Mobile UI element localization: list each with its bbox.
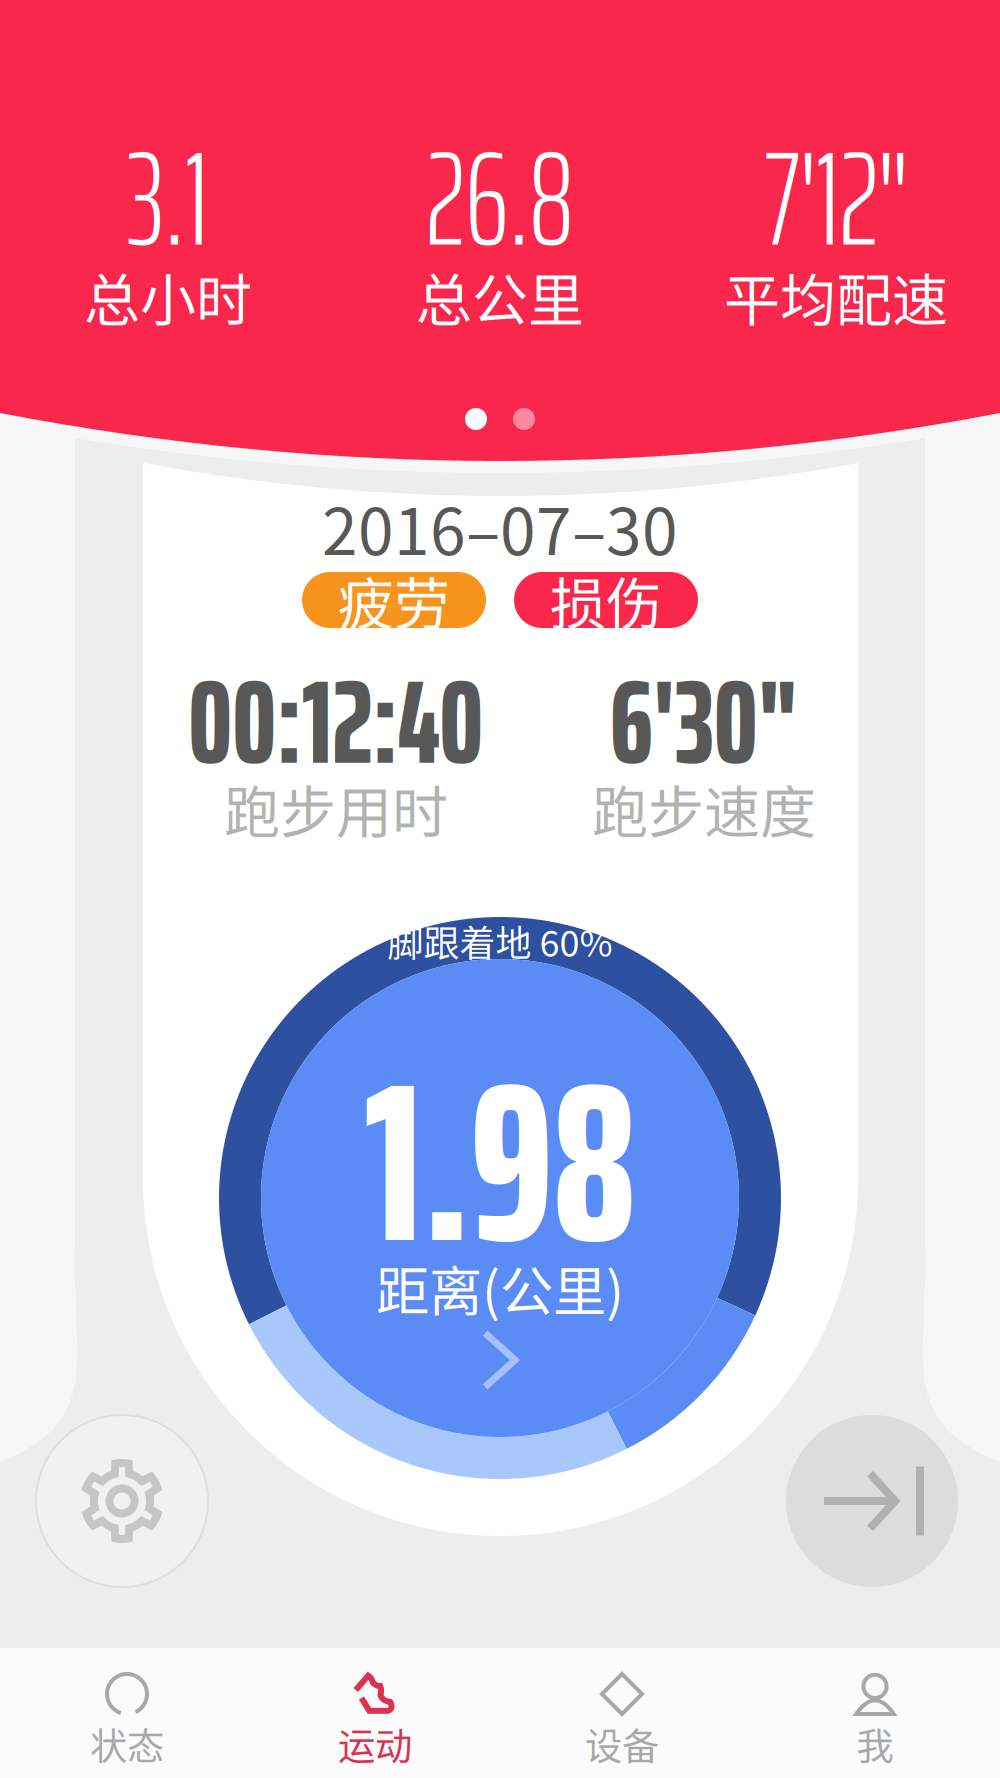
staticText: 脚跟着地 60% <box>387 915 612 967</box>
staticText: 总小时 <box>84 255 252 337</box>
staticText: 总公里 <box>416 255 584 337</box>
staticText: 6'30" <box>610 630 798 814</box>
button[interactable]: 损伤 <box>514 572 698 628</box>
staticText: 1.98 <box>363 986 636 1338</box>
button[interactable]: 状态 <box>27 1656 227 1778</box>
staticText: 平均配速 <box>724 255 948 337</box>
staticText: 损伤 <box>550 559 662 641</box>
staticText: 距离(公里) <box>376 1249 624 1327</box>
button[interactable]: Settings <box>36 1415 208 1587</box>
button[interactable]: 我 <box>775 1656 975 1778</box>
staticText: 状态 <box>90 1717 164 1771</box>
staticText: 7'12" <box>764 93 907 303</box>
staticText: 跑步用时 <box>224 767 448 849</box>
staticText: 运动 <box>338 1717 412 1771</box>
button[interactable]: Next <box>786 1415 958 1587</box>
button[interactable]: 设备 <box>522 1656 722 1778</box>
button[interactable]: 运动 <box>275 1656 475 1778</box>
staticText: 跑步速度 <box>592 767 816 849</box>
staticText: 2016–07–30 <box>322 481 678 573</box>
staticText: 疲劳 <box>338 559 450 641</box>
staticText: 3.1 <box>127 93 208 303</box>
button[interactable]: 疲劳 <box>302 572 486 628</box>
staticText: 我 <box>856 1717 893 1771</box>
staticText: 00:12:40 <box>188 630 483 814</box>
staticText: 设备 <box>585 1717 659 1771</box>
staticText: 26.8 <box>426 93 574 303</box>
